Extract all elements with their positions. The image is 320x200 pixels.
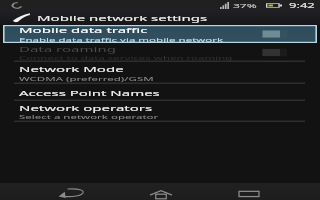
button[interactable]: Home xyxy=(138,183,184,200)
staticText: Connect to data services when roaming xyxy=(19,54,233,62)
staticText: Mobile data traffic xyxy=(19,25,148,35)
staticText: Network Mode xyxy=(19,64,124,74)
staticText: Mobile network settings xyxy=(37,13,208,23)
staticText: WCDMA (preferred)/GSM xyxy=(19,74,154,82)
staticText: Access Point Names xyxy=(19,87,160,97)
staticText: Network operators xyxy=(19,102,153,112)
button[interactable]: Network operators xyxy=(0,101,320,122)
button[interactable]: Network Mode xyxy=(0,62,320,84)
other: Up xyxy=(12,13,30,23)
button[interactable]: Mobile data traffic xyxy=(3,25,317,43)
button[interactable]: Recent apps xyxy=(226,183,272,200)
button[interactable]: Access Point Names xyxy=(0,84,320,101)
staticText: Data roaming xyxy=(19,43,116,53)
staticText: 37% xyxy=(233,1,257,9)
staticText: Enable data traffic via mobile network xyxy=(19,35,224,43)
button[interactable]: Up xyxy=(0,11,320,25)
staticText: 9:42 xyxy=(289,1,315,10)
button[interactable]: Data roaming xyxy=(0,43,320,62)
staticText: Select a network operator xyxy=(19,113,159,121)
button[interactable]: Back xyxy=(48,183,94,200)
